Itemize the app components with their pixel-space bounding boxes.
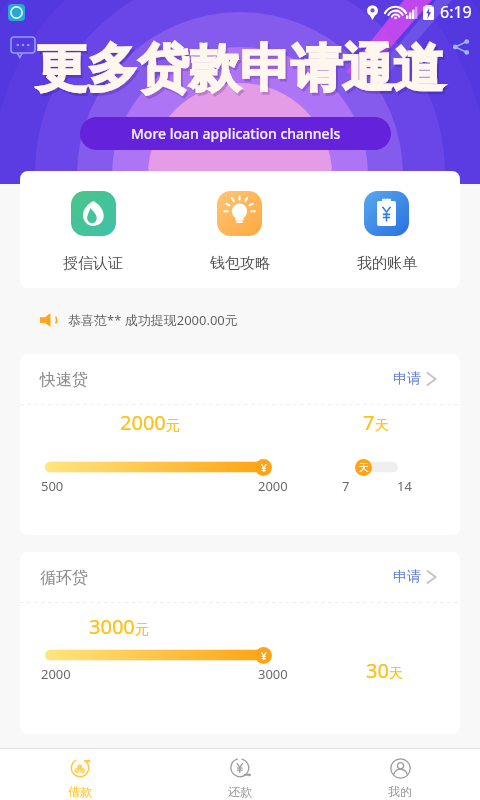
button[interactable]: 天 bbox=[355, 459, 372, 476]
staticText: 3000 bbox=[258, 665, 288, 683]
staticText: 天 bbox=[375, 417, 389, 435]
button[interactable]: 还款 bbox=[160, 749, 320, 800]
staticText: 授信认证 bbox=[63, 254, 123, 273]
button[interactable]: ¥ bbox=[255, 647, 272, 664]
staticText: 钱包攻略 bbox=[210, 254, 270, 273]
staticText: 天 bbox=[389, 665, 403, 683]
staticText: 2000 bbox=[258, 477, 288, 495]
button[interactable]: 授信认证 bbox=[20, 171, 166, 288]
staticText: 2000 bbox=[41, 665, 71, 683]
staticText: 元 bbox=[135, 621, 149, 639]
staticText: 申请 bbox=[393, 370, 421, 388]
staticText: 7 bbox=[342, 477, 350, 495]
staticText: 3000 bbox=[89, 613, 135, 640]
staticText: 6:19 bbox=[440, 1, 472, 23]
staticText: 我的 bbox=[388, 784, 412, 799]
staticText: 还款 bbox=[228, 784, 252, 799]
button[interactable]: More loan application channels bbox=[80, 117, 391, 150]
staticText: 14 bbox=[397, 477, 412, 495]
staticText: 快速贷 bbox=[40, 370, 88, 390]
staticText: ¥ bbox=[261, 649, 267, 663]
button[interactable]: 借款 bbox=[0, 749, 160, 800]
staticText: 元 bbox=[166, 417, 180, 435]
staticText: 循环贷 bbox=[40, 568, 88, 588]
staticText: 2000 bbox=[120, 409, 166, 436]
staticText: ¥ bbox=[261, 461, 267, 475]
staticText: 申请 bbox=[393, 568, 421, 586]
staticText: 30 bbox=[366, 657, 389, 684]
button[interactable]: 钱包攻略 bbox=[166, 171, 313, 288]
button[interactable]: 申请 bbox=[393, 568, 437, 586]
staticText: 500 bbox=[41, 477, 64, 495]
staticText: 借款 bbox=[68, 784, 92, 799]
button[interactable]: ¥ bbox=[255, 459, 272, 476]
staticText: 更多贷款申请通道 bbox=[36, 37, 444, 101]
button[interactable]: 我的账单 bbox=[313, 171, 460, 288]
staticText: 更多贷款申请通道 bbox=[38, 40, 446, 104]
button[interactable]: 我的 bbox=[320, 749, 480, 800]
staticText: 恭喜范** 成功提现2000.00元 bbox=[68, 311, 238, 329]
staticText: 天 bbox=[359, 461, 369, 474]
staticText: 我的账单 bbox=[357, 254, 417, 273]
staticText: More loan application channels bbox=[131, 124, 341, 143]
button[interactable]: 申请 bbox=[393, 370, 437, 388]
staticText: 7 bbox=[363, 409, 375, 436]
